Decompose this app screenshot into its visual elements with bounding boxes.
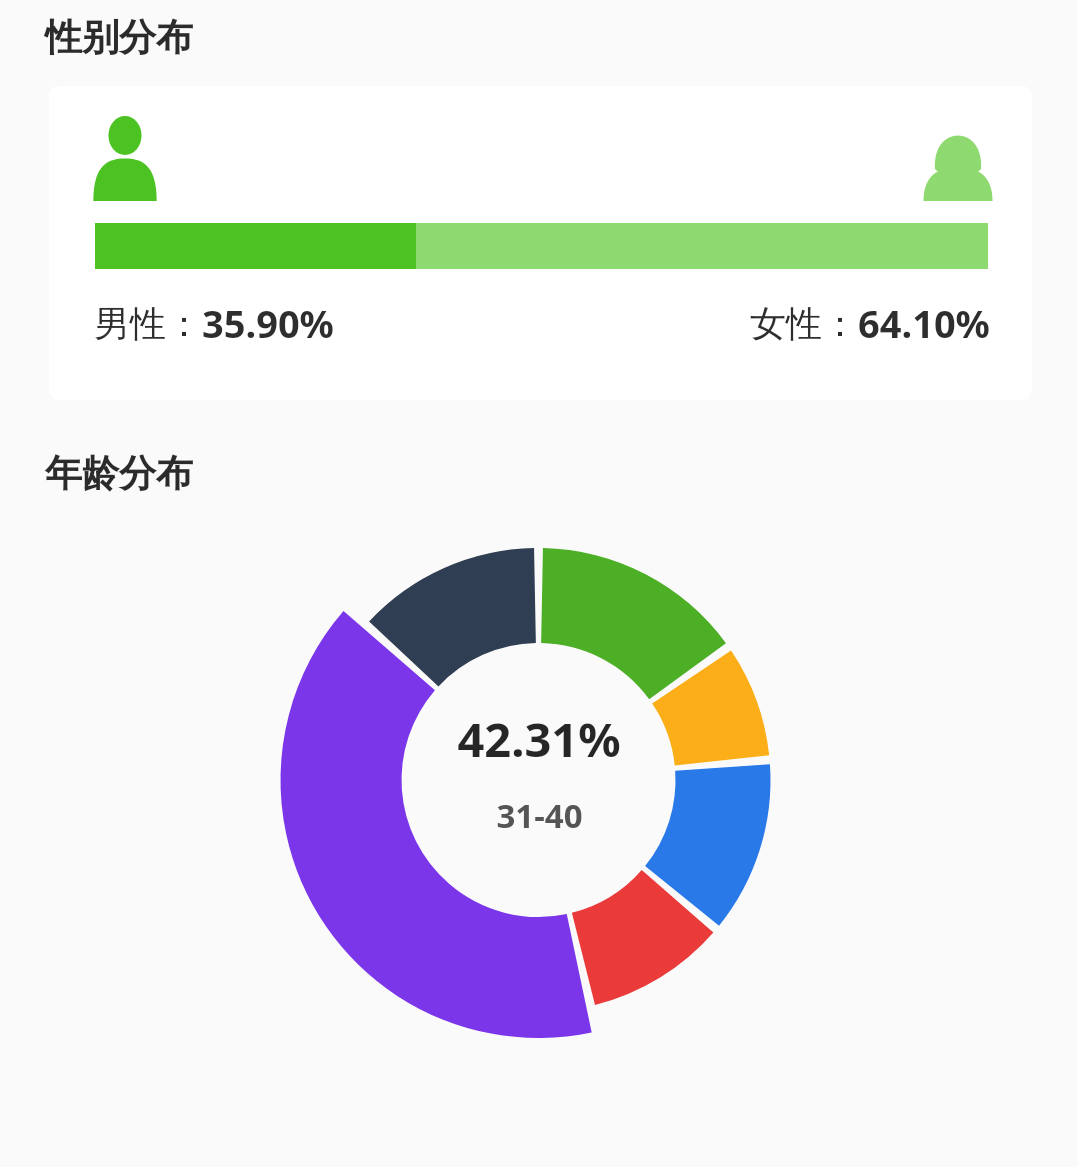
staticText: 35.90% <box>202 297 334 349</box>
staticText: 女性： <box>750 301 858 346</box>
staticText: 男性： <box>94 301 202 346</box>
button[interactable] <box>0 545 1077 1015</box>
staticText: 31-40 <box>496 793 583 838</box>
staticText: 64.10% <box>858 297 990 349</box>
other: Female <box>922 116 994 201</box>
staticText: 年龄分布 <box>45 450 193 497</box>
button[interactable]: Male <box>49 86 1032 400</box>
staticText: 性别分布 <box>45 14 193 61</box>
other: Male <box>89 116 161 201</box>
staticText: 42.31% <box>457 707 621 771</box>
